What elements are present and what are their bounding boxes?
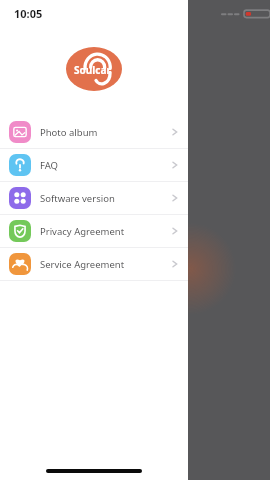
staticText: 10:05: [14, 6, 43, 21]
staticText: Service Agreement: [40, 258, 125, 271]
staticText: FAQ: [40, 159, 59, 172]
button[interactable]: Photo album: [0, 116, 188, 148]
staticText: Privacy Agreement: [40, 225, 125, 238]
button[interactable]: Privacy Agreement: [0, 215, 188, 247]
button[interactable]: Software version: [0, 182, 188, 214]
button[interactable]: FAQ: [0, 149, 188, 181]
staticText: Soulcar: [74, 63, 111, 77]
staticText: Software version: [40, 192, 115, 205]
button[interactable]: Service Agreement: [0, 248, 188, 280]
staticText: Photo album: [40, 126, 98, 139]
